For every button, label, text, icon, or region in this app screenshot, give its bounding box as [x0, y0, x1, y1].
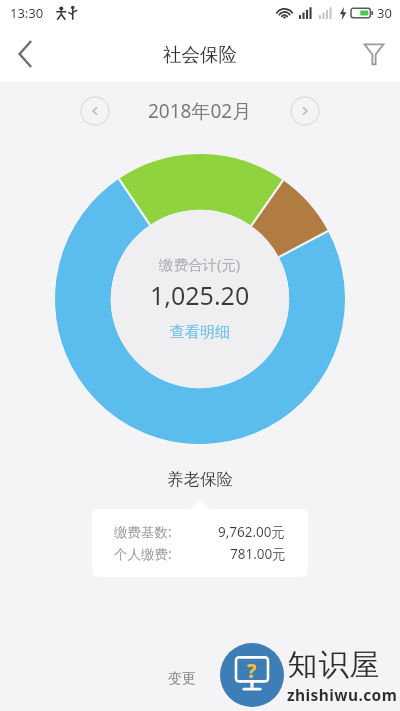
- staticText: 9,762.00元: [218, 523, 286, 541]
- staticText: 1,025.20: [150, 278, 250, 312]
- button[interactable]: Next month: [290, 96, 320, 126]
- staticText: 变更: [168, 670, 196, 688]
- staticText: 养老保险: [0, 469, 400, 490]
- staticText: 2018年02月: [148, 98, 252, 124]
- button[interactable]: 缴费基数:: [92, 509, 308, 577]
- button[interactable]: Previous month: [80, 96, 110, 126]
- staticText: 社会保险: [163, 43, 237, 66]
- staticText: 查看明细: [170, 323, 230, 342]
- staticText: zhishiwu.com: [287, 684, 398, 705]
- button[interactable]: Filter: [348, 28, 400, 80]
- button[interactable]: 查看明细: [164, 321, 236, 344]
- staticText: 30: [377, 4, 392, 22]
- staticText: 13:30: [10, 4, 44, 22]
- button[interactable]: Back: [0, 28, 52, 80]
- staticText: 知识屋: [287, 646, 380, 684]
- staticText: 个人缴费:: [114, 545, 172, 563]
- staticText: ?: [247, 657, 257, 684]
- staticText: 缴费基数:: [114, 523, 172, 541]
- staticText: 781.00元: [230, 545, 286, 563]
- staticText: 缴费合计(元): [159, 254, 241, 274]
